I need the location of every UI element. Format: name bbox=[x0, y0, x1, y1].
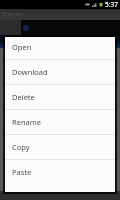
staticText: Explorer bbox=[2, 11, 23, 18]
button[interactable] bbox=[0, 35, 120, 48]
staticText: Paste bbox=[12, 167, 32, 177]
staticText: Download bbox=[12, 67, 48, 77]
button[interactable]: Delete bbox=[5, 84, 115, 109]
button[interactable]: Rename bbox=[5, 109, 115, 134]
button[interactable]: Paste bbox=[5, 159, 115, 184]
button[interactable] bbox=[0, 20, 120, 35]
button[interactable]: Open bbox=[5, 34, 115, 59]
staticText: Delete bbox=[12, 92, 35, 102]
staticText: Copy bbox=[12, 142, 30, 152]
button[interactable]: Copy bbox=[5, 134, 115, 159]
staticText: 5:37 bbox=[105, 0, 118, 9]
staticText: Rename bbox=[12, 117, 41, 127]
staticText: Open bbox=[12, 42, 32, 52]
button[interactable]: Download bbox=[5, 59, 115, 84]
